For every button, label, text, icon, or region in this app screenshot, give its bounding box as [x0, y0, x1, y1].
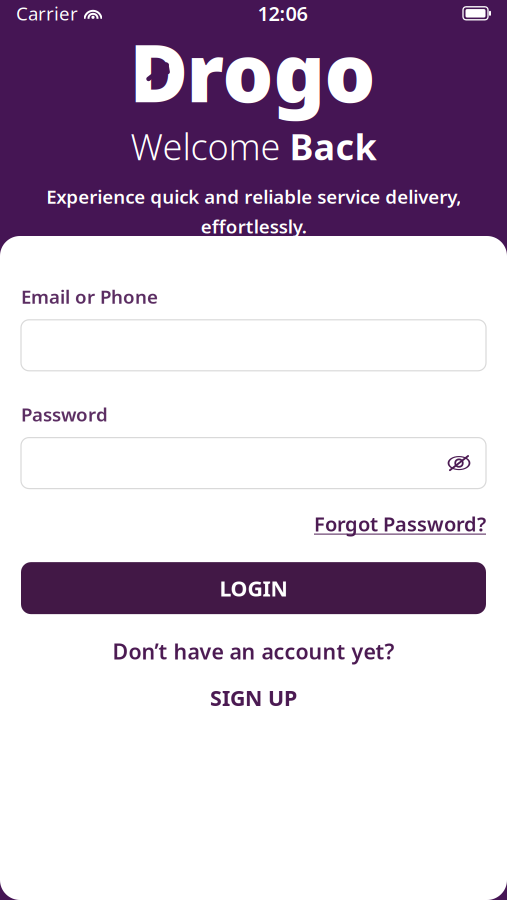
- staticText: Welcome: [130, 122, 289, 170]
- staticText: rogo: [186, 18, 375, 124]
- staticText: Password: [21, 402, 108, 427]
- staticText: LOGIN: [219, 574, 287, 602]
- staticText: SIGN UP: [210, 683, 297, 712]
- staticText: Experience quick and reliable service de…: [46, 184, 461, 239]
- button[interactable]: Forgot Password?: [314, 511, 486, 537]
- staticText: D: [129, 18, 188, 124]
- staticText: Back: [289, 122, 376, 170]
- staticText: Don’t have an account yet?: [112, 637, 394, 665]
- staticText: 12:06: [257, 0, 307, 27]
- staticText: Email or Phone: [21, 284, 158, 309]
- button[interactable]: LOGIN: [21, 562, 486, 614]
- staticText: Forgot Password?: [314, 511, 486, 537]
- button[interactable]: Show password: [442, 446, 476, 480]
- button[interactable]: SIGN UP: [21, 677, 486, 718]
- staticText: Carrier: [16, 1, 78, 26]
